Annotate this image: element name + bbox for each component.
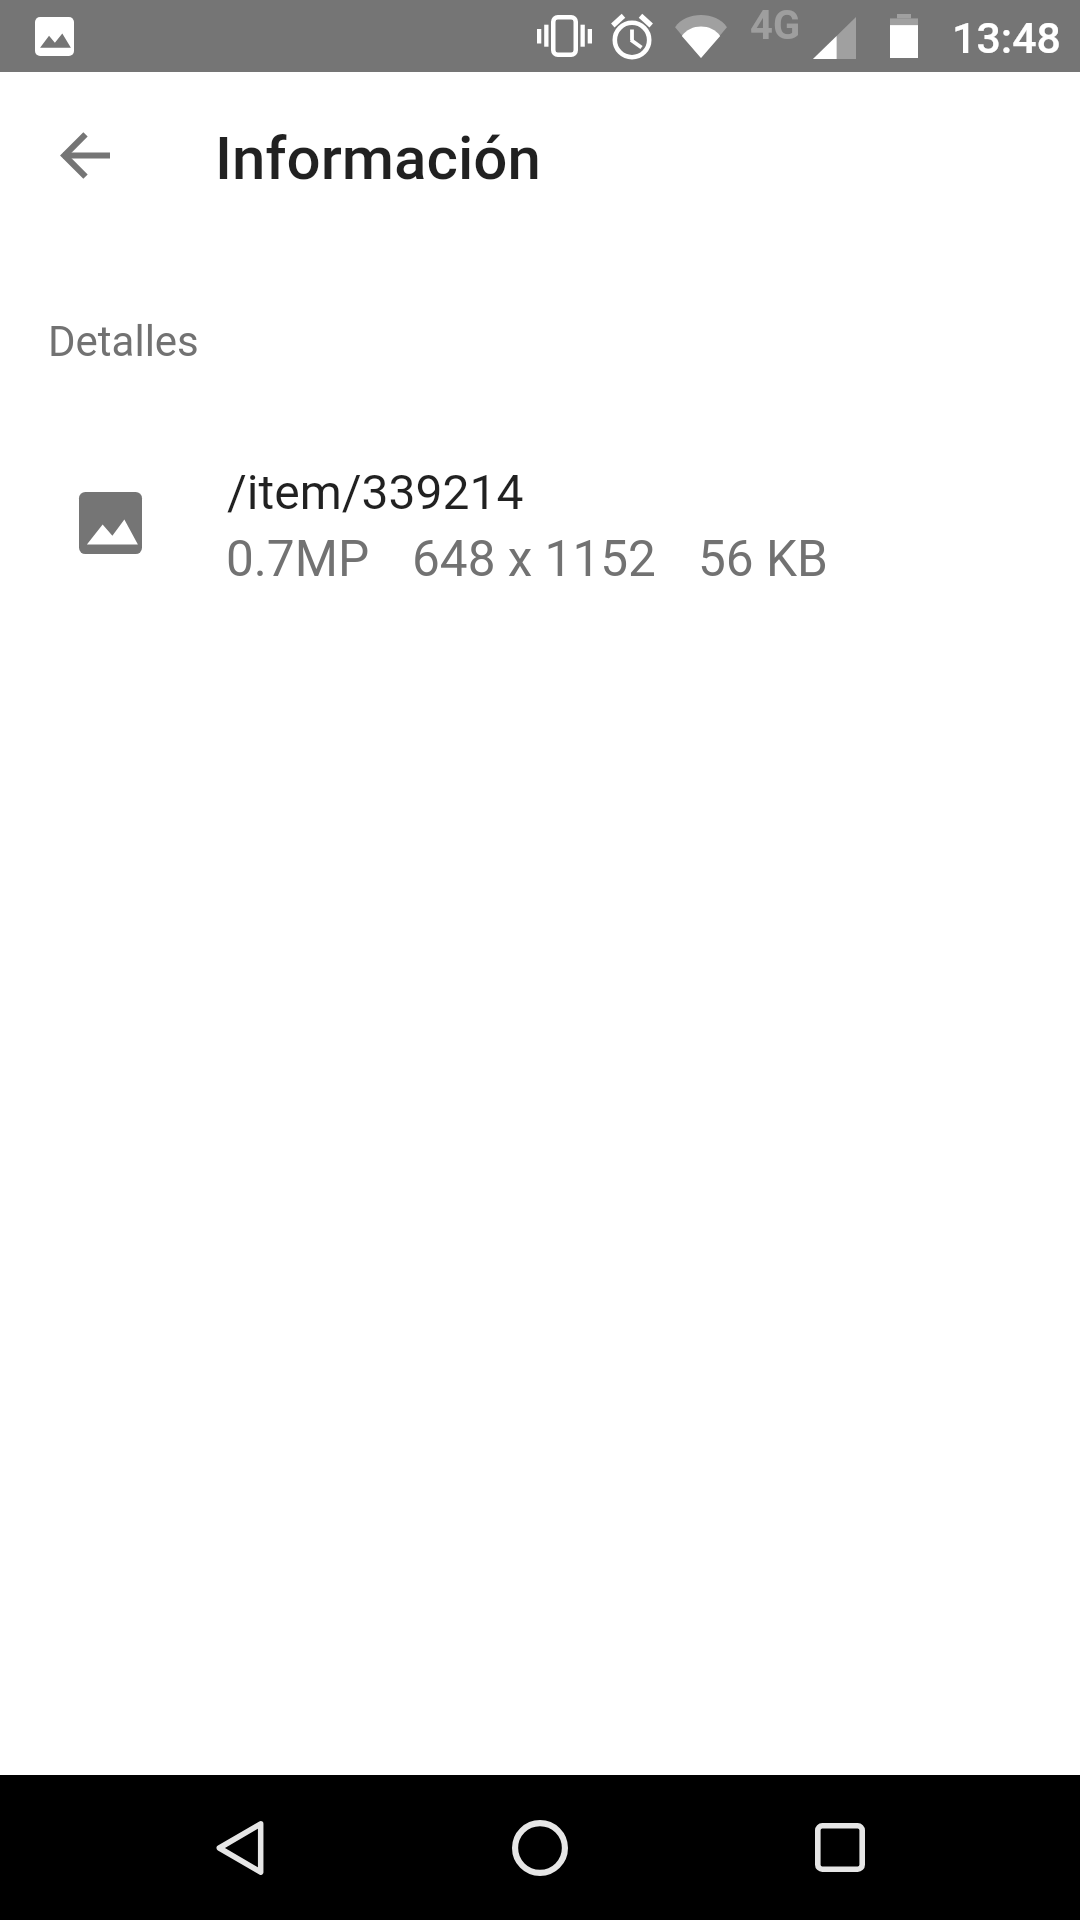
- staticText: 56 KB: [698, 530, 828, 588]
- staticText: 13:48: [952, 13, 1061, 63]
- staticText: 648 x 1152: [412, 530, 656, 588]
- staticText: Información: [215, 123, 541, 193]
- button[interactable]: Back: [120, 1775, 360, 1920]
- button[interactable]: Recent apps: [720, 1775, 960, 1920]
- button[interactable]: Navigate up: [25, 95, 145, 215]
- button[interactable]: /item/339214: [0, 438, 1080, 603]
- staticText: Detalles: [48, 317, 199, 366]
- staticText: 4G: [750, 2, 801, 49]
- button[interactable]: Home: [420, 1775, 660, 1920]
- staticText: /item/339214: [227, 464, 524, 520]
- staticText: 0.7MP: [226, 530, 370, 588]
